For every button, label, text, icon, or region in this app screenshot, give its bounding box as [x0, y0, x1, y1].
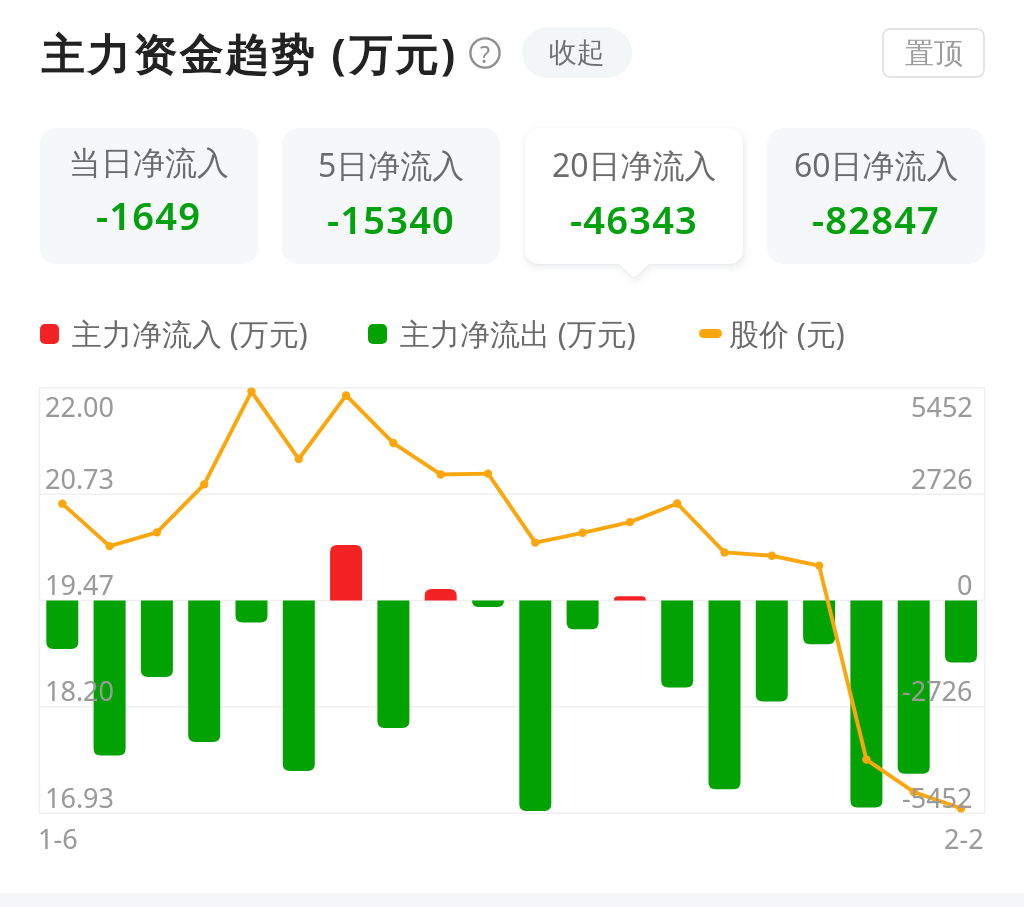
staticText: 收起: [549, 35, 605, 70]
button[interactable]: 收起: [522, 27, 632, 78]
staticText: 20.73: [45, 460, 115, 497]
staticText: 5日净流入: [318, 143, 465, 187]
button[interactable]: 主力净流入 (万元): [40, 313, 308, 354]
button[interactable]: 60日净流入: [767, 128, 985, 276]
staticText: ?: [480, 38, 490, 69]
button[interactable]: 当日净流入: [40, 128, 258, 276]
staticText: 股价 (元): [729, 313, 845, 354]
staticText: -82847: [812, 193, 941, 245]
staticText: 18.20: [45, 672, 115, 709]
staticText: 1-6: [38, 820, 78, 857]
button[interactable]: 主力资金趋势 (万元): [41, 24, 459, 83]
button[interactable]: 主力净流出 (万元): [368, 313, 636, 354]
staticText: 主力净流入 (万元): [72, 313, 308, 354]
staticText: 2-2: [944, 820, 984, 857]
staticText: 置顶: [905, 35, 963, 72]
button[interactable]: 股价 (元): [699, 313, 845, 354]
staticText: 20日净流入: [552, 143, 717, 187]
staticText: 主力净流出 (万元): [400, 313, 636, 354]
staticText: 主力资金趋势 (万元): [41, 24, 459, 83]
staticText: 22.00: [45, 388, 115, 425]
staticText: 0: [957, 566, 973, 603]
staticText: -1649: [96, 189, 202, 241]
button[interactable]: 5日净流入: [282, 128, 500, 276]
staticText: 5452: [911, 388, 973, 425]
staticText: -46343: [570, 193, 699, 245]
staticText: 60日净流入: [794, 143, 959, 187]
staticText: -15340: [327, 193, 456, 245]
staticText: 2726: [911, 460, 973, 497]
button[interactable]: 20日净流入: [525, 128, 743, 276]
staticText: 16.93: [45, 779, 115, 816]
button[interactable]: 1-6: [38, 820, 78, 857]
staticText: 19.47: [45, 566, 115, 603]
button[interactable]: 置顶: [882, 28, 985, 78]
staticText: -5452: [902, 779, 973, 816]
staticText: 当日净流入: [69, 143, 229, 183]
button[interactable]: Help: [469, 37, 501, 69]
staticText: -2726: [902, 672, 973, 709]
